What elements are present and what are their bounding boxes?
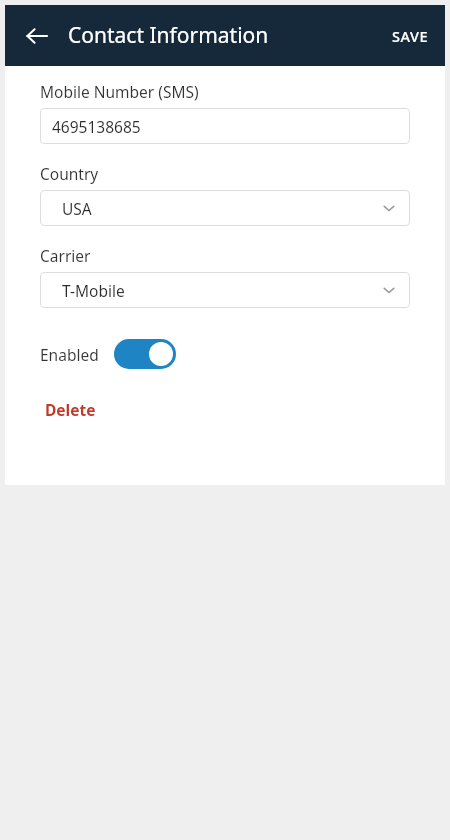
staticText: SAVE	[392, 26, 429, 46]
staticText: T-Mobile	[62, 280, 125, 301]
staticText: Delete	[45, 399, 96, 420]
button[interactable]: T-Mobile	[40, 272, 410, 308]
staticText: Country	[40, 163, 99, 184]
staticText: Carrier	[40, 245, 91, 266]
staticText: Enabled	[40, 344, 99, 365]
staticText: Contact Information	[68, 21, 269, 50]
button[interactable]: Back	[15, 14, 59, 58]
staticText: Mobile Number (SMS)	[40, 81, 199, 102]
button[interactable]: Enabled toggle	[114, 339, 176, 369]
button[interactable]: Delete	[40, 393, 101, 426]
button[interactable]: SAVE	[376, 5, 445, 66]
button[interactable]: 4695138685	[40, 108, 410, 144]
button[interactable]: Enabled	[40, 333, 176, 375]
staticText: 4695138685	[52, 116, 141, 137]
button[interactable]: USA	[40, 190, 410, 226]
staticText: USA	[62, 198, 92, 219]
